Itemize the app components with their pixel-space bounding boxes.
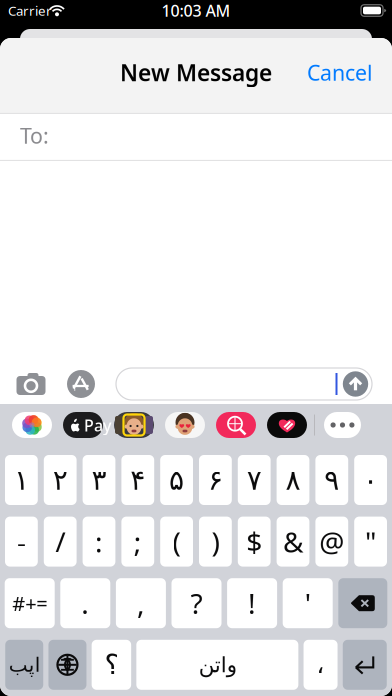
button[interactable]: Take photo: [12, 368, 50, 400]
staticText: ٣: [91, 464, 106, 496]
button[interactable]: Send: [343, 371, 368, 397]
staticText: ٨: [285, 464, 300, 496]
staticText: اپب: [8, 653, 40, 676]
staticText: ۶: [208, 464, 223, 496]
staticText: /: [55, 523, 65, 560]
button[interactable]: ۶: [199, 455, 232, 505]
staticText: -: [17, 523, 26, 560]
button[interactable]: Digital Touch: [267, 412, 307, 438]
button[interactable]: #+=: [5, 578, 55, 628]
staticText: Carrier: [8, 2, 52, 19]
staticText: ': [305, 585, 311, 622]
button[interactable]: !: [227, 578, 277, 628]
staticText: ۵: [169, 464, 184, 496]
staticText: ;: [134, 523, 142, 560]
button[interactable]: Next keyboard: [48, 640, 86, 690]
button[interactable]: اپب: [5, 640, 43, 690]
staticText: ": [365, 523, 376, 560]
button[interactable]: (: [160, 517, 193, 567]
staticText: ١: [14, 464, 29, 496]
staticText: New Message: [120, 57, 272, 87]
button[interactable]: ": [354, 517, 387, 567]
button[interactable]: @: [315, 517, 348, 567]
staticText: ,: [137, 585, 145, 622]
staticText: واتن: [198, 653, 236, 677]
button[interactable]: ١: [5, 455, 38, 505]
button[interactable]: واتن: [136, 640, 298, 690]
button[interactable]: ٧: [238, 455, 271, 505]
staticText: ،: [317, 651, 325, 678]
button[interactable]: ;: [121, 517, 154, 567]
staticText: #+=: [12, 590, 47, 616]
button[interactable]: ?: [171, 578, 221, 628]
staticText: @: [319, 523, 344, 560]
button[interactable]: .: [60, 578, 110, 628]
staticText: $: [246, 523, 262, 560]
staticText: ؟: [104, 649, 119, 681]
button[interactable]: &: [277, 517, 309, 567]
button[interactable]: ٨: [277, 455, 309, 505]
button[interactable]: App Store: [65, 368, 97, 400]
button[interactable]: Return: [343, 640, 387, 690]
staticText: ٠: [363, 464, 378, 496]
button[interactable]: ٩: [315, 455, 348, 505]
staticText: :: [95, 523, 103, 560]
staticText: ۴: [130, 464, 145, 496]
staticText: 10:03 AM: [161, 0, 230, 21]
staticText: Cancel: [307, 58, 373, 87]
button[interactable]: ،: [304, 640, 338, 690]
button[interactable]: ٠: [354, 455, 387, 505]
button[interactable]: -: [5, 517, 38, 567]
staticText: &: [283, 523, 303, 560]
button[interactable]: Images: [216, 412, 256, 438]
button[interactable]: Apple Pay: [63, 412, 103, 438]
button[interactable]: More: [324, 412, 361, 438]
staticText: ٧: [247, 464, 262, 496]
button[interactable]: Delete: [338, 578, 387, 628]
button[interactable]: ۴: [121, 455, 154, 505]
button[interactable]: /: [44, 517, 77, 567]
button[interactable]: ؟: [92, 640, 131, 690]
button[interactable]: ): [199, 517, 232, 567]
button[interactable]: ,: [116, 578, 166, 628]
button[interactable]: ': [283, 578, 333, 628]
button[interactable]: Photos: [12, 412, 52, 438]
staticText: ٢: [53, 464, 68, 496]
staticText: .: [81, 585, 89, 622]
staticText: Pay: [84, 415, 111, 436]
staticText: ?: [190, 585, 202, 622]
button[interactable]: Cancel: [299, 53, 373, 91]
button[interactable]: $: [238, 517, 271, 567]
button[interactable]: ٣: [83, 455, 115, 505]
staticText: ): [211, 523, 219, 560]
staticText: ٩: [324, 464, 339, 496]
button[interactable]: ٢: [44, 455, 77, 505]
staticText: To:: [20, 121, 49, 150]
staticText: !: [248, 585, 256, 622]
button[interactable]: ۵: [160, 455, 193, 505]
button[interactable]: :: [83, 517, 115, 567]
button[interactable]: Memoji stickers: [165, 412, 205, 438]
staticText: (: [173, 523, 181, 560]
button[interactable]: Memoji: [114, 412, 154, 438]
